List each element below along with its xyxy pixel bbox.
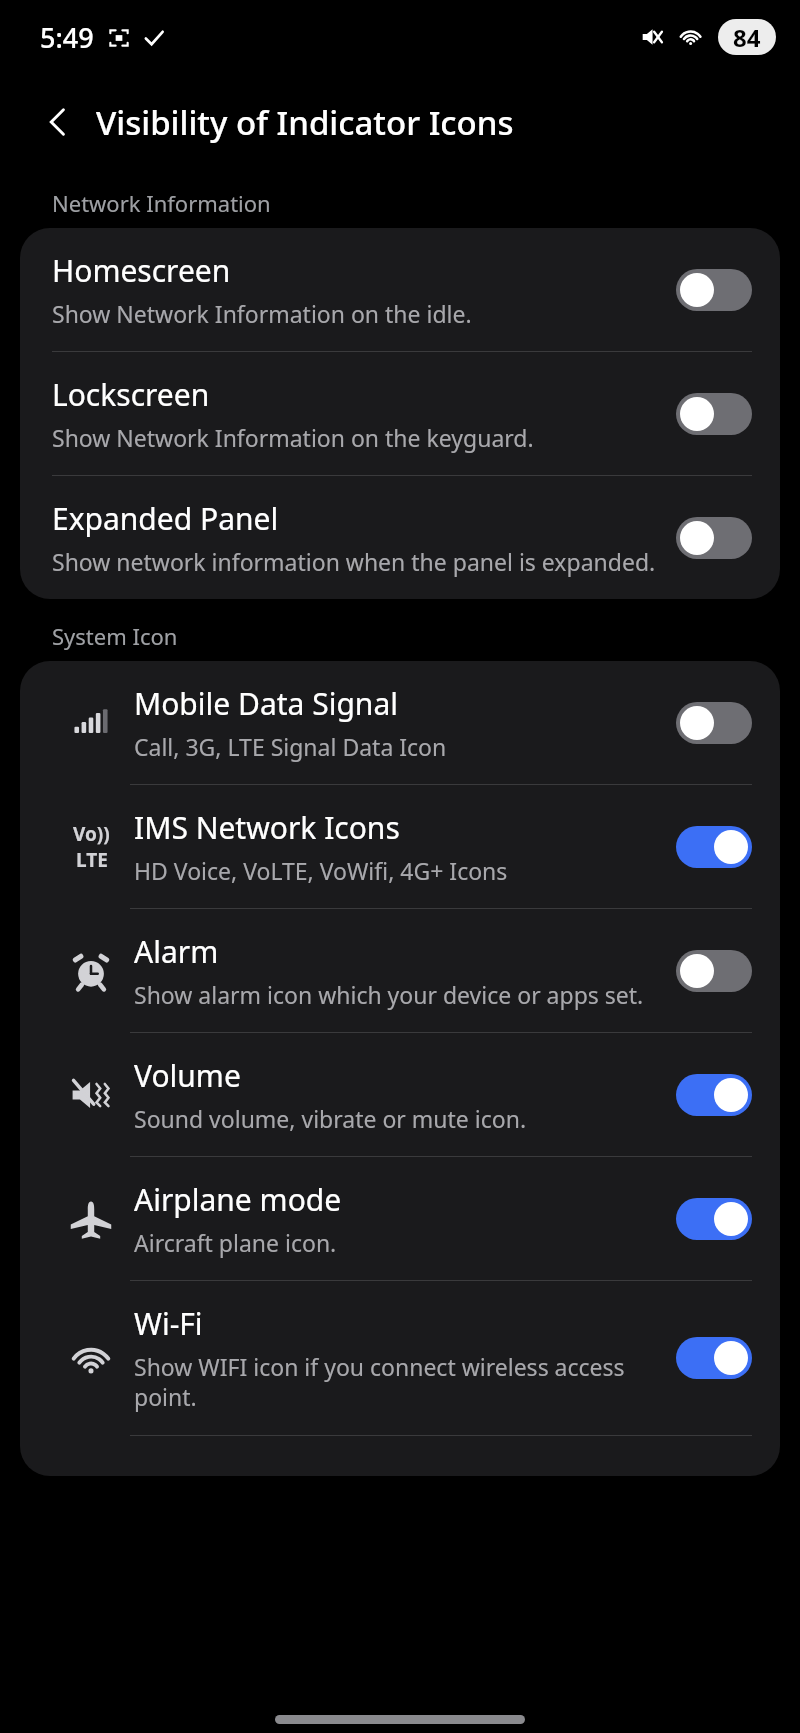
- staticText: Visibility of Indicator Icons: [96, 100, 514, 145]
- button[interactable]: Homescreen: [20, 228, 780, 352]
- staticText: Show Network Information on the keyguard…: [52, 422, 534, 453]
- button[interactable]: Off: [676, 269, 752, 311]
- staticText: System Icon: [52, 621, 178, 651]
- staticText: HD Voice, VoLTE, VoWifi, 4G+ Icons: [134, 855, 508, 886]
- staticText: Homescreen: [52, 250, 231, 291]
- button[interactable]: Airplane mode: [20, 1157, 780, 1281]
- staticText: Show Network Information on the idle.: [52, 298, 472, 329]
- staticText: Vo)): [73, 821, 110, 847]
- staticText: Show WIFI icon if you connect wireless a…: [134, 1351, 662, 1413]
- button[interactable]: Vo)): [20, 785, 780, 909]
- staticText: Expanded Panel: [52, 498, 279, 539]
- staticText: LTE: [76, 847, 108, 873]
- staticText: Wi-Fi: [134, 1303, 203, 1344]
- button[interactable]: Alarm: [20, 909, 780, 1033]
- staticText: Lockscreen: [52, 374, 210, 415]
- button[interactable]: Off: [676, 393, 752, 435]
- button[interactable]: Mobile Data Signal: [20, 661, 780, 785]
- staticText: Sound volume, vibrate or mute icon.: [134, 1103, 527, 1134]
- button[interactable]: Lockscreen: [20, 352, 780, 476]
- button[interactable]: Volume: [20, 1033, 780, 1157]
- staticText: 5:49: [40, 19, 94, 56]
- staticText: Volume: [134, 1055, 241, 1096]
- staticText: Mobile Data Signal: [134, 683, 398, 724]
- button[interactable]: On: [676, 1198, 752, 1240]
- staticText: Network Information: [52, 188, 271, 218]
- staticText: Show alarm icon which your device or app…: [134, 979, 644, 1010]
- button[interactable]: Off: [676, 950, 752, 992]
- button[interactable]: Wi-Fi: [20, 1281, 780, 1436]
- staticText: Aircraft plane icon.: [134, 1227, 337, 1258]
- button[interactable]: Off: [676, 517, 752, 559]
- staticText: Airplane mode: [134, 1179, 342, 1220]
- button[interactable]: Expanded Panel: [20, 476, 780, 599]
- button[interactable]: Back: [34, 98, 82, 146]
- button[interactable]: On: [676, 826, 752, 868]
- button[interactable]: On: [676, 1074, 752, 1116]
- staticText: Show network information when the panel …: [52, 546, 656, 577]
- button[interactable]: Off: [676, 702, 752, 744]
- staticText: Alarm: [134, 931, 219, 972]
- button[interactable]: On: [676, 1337, 752, 1379]
- staticText: IMS Network Icons: [134, 807, 400, 848]
- staticText: Call, 3G, LTE Signal Data Icon: [134, 731, 447, 762]
- staticText: 84: [733, 21, 761, 54]
